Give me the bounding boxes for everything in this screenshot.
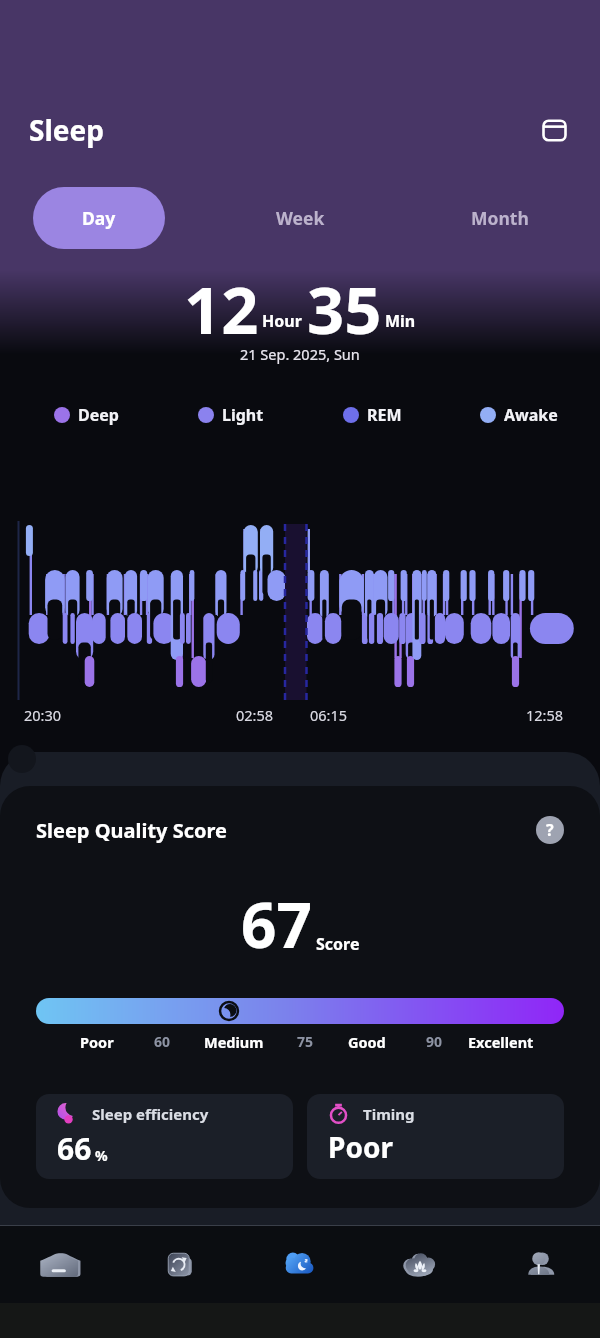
staticText: 75 — [297, 1032, 314, 1051]
staticText: 67 — [241, 882, 312, 966]
staticText: 02:58 — [236, 705, 274, 725]
staticText: Light — [222, 404, 264, 426]
staticText: Poor — [80, 1032, 114, 1052]
staticText: Week — [276, 206, 325, 230]
button[interactable]: Profile — [480, 1226, 600, 1303]
button[interactable]: Sleep — [240, 1226, 360, 1303]
staticText: Awake — [504, 404, 558, 426]
staticText: 12 — [184, 265, 259, 354]
button[interactable]: Help — [536, 816, 564, 844]
button[interactable]: Timing — [307, 1094, 564, 1179]
staticText: Deep — [78, 404, 119, 426]
staticText: Excellent — [468, 1032, 534, 1052]
staticText: 21 Sep. 2025, Sun — [240, 344, 360, 364]
staticText: Score — [316, 933, 360, 955]
staticText: % — [95, 1146, 108, 1165]
button[interactable]: Week — [215, 187, 385, 249]
button[interactable]: Calendar view — [531, 107, 577, 153]
staticText: 35 — [307, 265, 382, 354]
staticText: Timing — [363, 1104, 415, 1124]
button[interactable]: Devices — [120, 1226, 240, 1303]
staticText: REM — [367, 404, 402, 426]
button[interactable]: Day — [33, 187, 165, 249]
staticText: Min — [385, 310, 416, 332]
staticText: Good — [348, 1032, 386, 1052]
staticText: Medium — [204, 1032, 264, 1052]
staticText: Hour — [262, 310, 302, 332]
button[interactable]: Sleep efficiency — [36, 1094, 293, 1179]
staticText: 66 — [57, 1128, 92, 1169]
staticText: Sleep Quality Score — [36, 817, 228, 844]
staticText: Sleep efficiency — [92, 1104, 209, 1124]
staticText: 60 — [154, 1032, 171, 1051]
staticText: Day — [82, 206, 116, 230]
button[interactable]: Relax — [360, 1226, 480, 1303]
staticText: 20:30 — [24, 705, 62, 725]
staticText: ? — [546, 819, 554, 841]
staticText: Poor — [328, 1128, 393, 1166]
staticText: 06:15 — [310, 705, 348, 725]
staticText: 90 — [426, 1032, 443, 1051]
button[interactable]: Home — [0, 1226, 120, 1303]
staticText: 12:58 — [526, 705, 564, 725]
staticText: Month — [471, 206, 529, 230]
staticText: Sleep — [29, 111, 104, 149]
button[interactable]: Month — [415, 187, 585, 249]
